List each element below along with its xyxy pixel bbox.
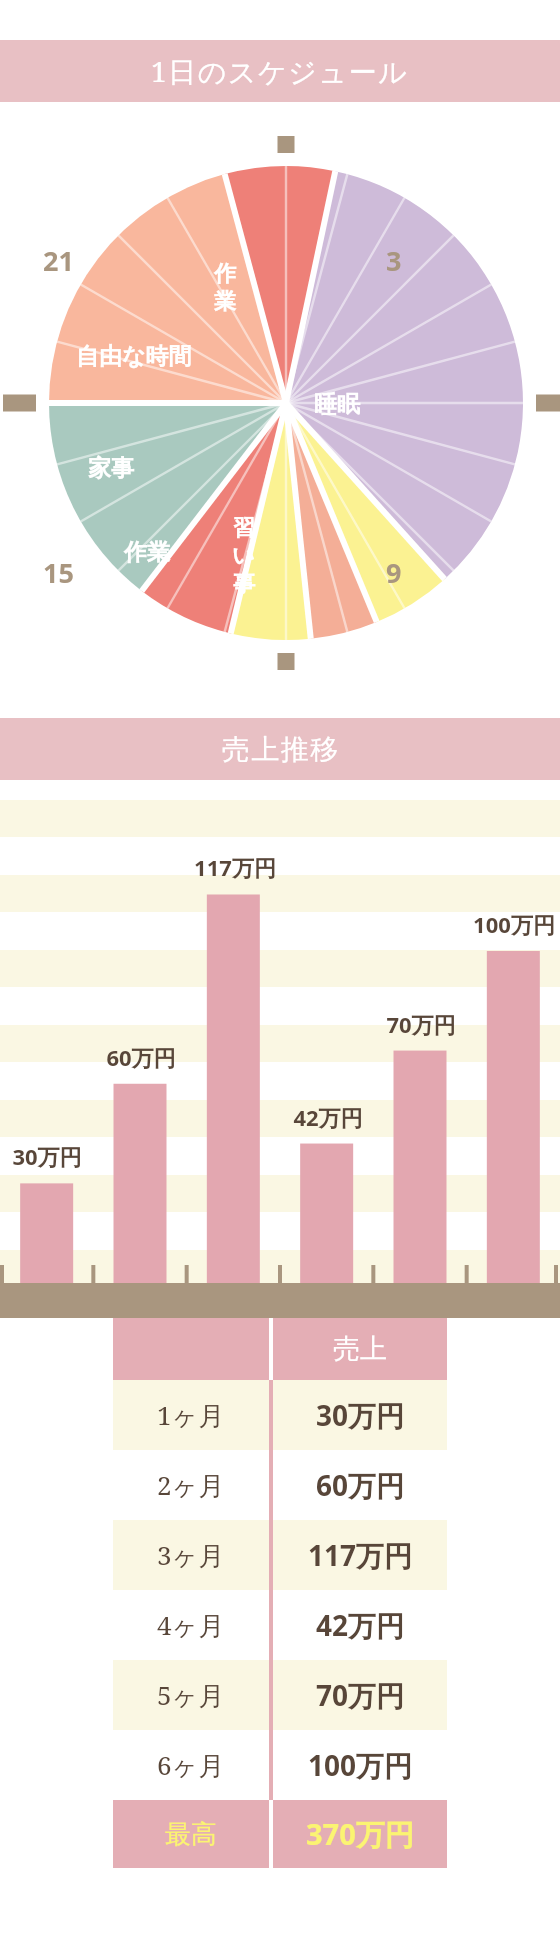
button[interactable]: 2ヶ月 <box>113 1450 447 1520</box>
staticText: 30万円 <box>316 1396 405 1434</box>
staticText: 作 <box>214 260 236 288</box>
staticText: 3ヶ月 <box>157 1537 225 1573</box>
button[interactable]: 1日のスケジュール円グラフ <box>0 102 560 718</box>
staticText: 作業 <box>124 538 170 567</box>
staticText: 5ヶ月 <box>157 1677 225 1713</box>
button[interactable]: 売上推移棒グラフ <box>0 780 560 1318</box>
staticText: 6ヶ月 <box>157 1747 225 1783</box>
staticText: 事 <box>233 570 255 598</box>
staticText: 15 <box>43 554 74 591</box>
staticText: 習 <box>233 514 255 542</box>
staticText: 3 <box>386 242 402 279</box>
button[interactable]: 1日のスケジュール <box>0 40 560 102</box>
staticText: 家事 <box>88 454 134 483</box>
button[interactable]: 4ヶ月 <box>113 1590 447 1660</box>
staticText: 業 <box>214 288 236 316</box>
staticText: 60万円 <box>106 1042 176 1072</box>
staticText: 100万円 <box>473 909 555 939</box>
staticText: 睡眠 <box>314 390 360 419</box>
button[interactable]: 5ヶ月 <box>113 1660 447 1730</box>
staticText: 2ヶ月 <box>157 1467 225 1503</box>
staticText: 21 <box>43 242 74 279</box>
staticText: 9 <box>386 554 402 591</box>
staticText: 30万円 <box>12 1141 82 1171</box>
staticText: 4ヶ月 <box>157 1607 225 1643</box>
staticText: 1日のスケジュール <box>151 52 409 90</box>
staticText: 370万円 <box>306 1814 414 1854</box>
staticText: 42万円 <box>316 1606 405 1644</box>
staticText: 42万円 <box>293 1102 363 1132</box>
button[interactable]: 3ヶ月 <box>113 1520 447 1590</box>
staticText: 1ヶ月 <box>157 1397 225 1433</box>
staticText: 117万円 <box>308 1536 413 1574</box>
staticText: 70万円 <box>386 1009 456 1039</box>
staticText: 100万円 <box>308 1746 413 1784</box>
staticText: 売上 <box>333 1332 387 1366</box>
staticText: 売上推移 <box>221 732 339 767</box>
button[interactable]: 6ヶ月 <box>113 1730 447 1800</box>
staticText: 70万円 <box>316 1676 405 1714</box>
staticText: 自由な時間 <box>76 342 192 371</box>
staticText: い <box>232 542 255 570</box>
staticText: 117万円 <box>194 852 276 882</box>
staticText: 60万円 <box>316 1466 405 1504</box>
button[interactable]: 売上 <box>273 1318 447 1380</box>
button[interactable]: 売上推移 <box>0 718 560 780</box>
staticText: 最高 <box>165 1818 217 1851</box>
button[interactable]: 最高 <box>113 1800 447 1868</box>
button[interactable]: 1ヶ月 <box>113 1380 447 1450</box>
